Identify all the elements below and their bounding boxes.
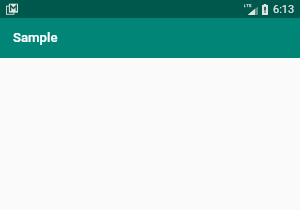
staticText: Sample — [13, 30, 58, 45]
staticText: 6:13 — [273, 3, 295, 16]
